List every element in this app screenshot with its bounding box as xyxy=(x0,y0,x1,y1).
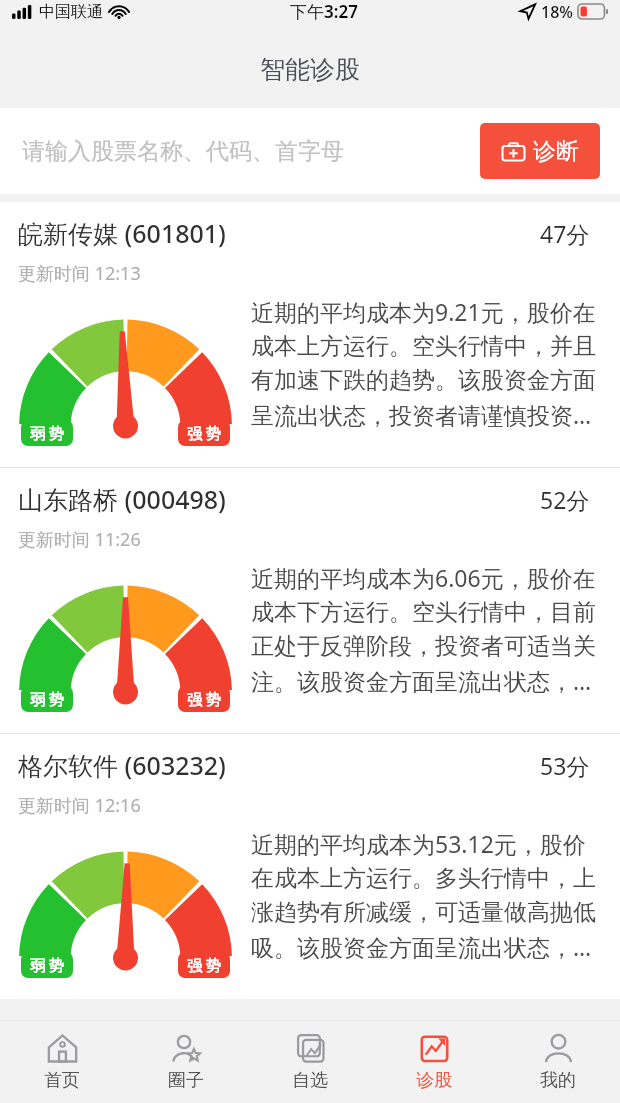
staticText: 山东路桥 (000498) xyxy=(18,482,226,516)
staticText: 强 势 xyxy=(187,689,221,709)
staticText: 智能诊股 xyxy=(260,54,360,85)
staticText: 请输入股票名称、代码、首字母 xyxy=(22,137,344,166)
staticText: 格尔软件 (603232) xyxy=(18,748,226,782)
staticText: 首页 xyxy=(44,1069,80,1092)
button[interactable]: 自选 xyxy=(248,1021,372,1103)
button[interactable]: 请输入股票名称、代码、首字母 xyxy=(22,137,472,166)
staticText: 弱 势 xyxy=(30,423,64,443)
staticText: 皖新传媒 (601801) xyxy=(18,216,226,250)
staticText: 47分 xyxy=(540,218,590,249)
staticText: 近期的平均成本为6.06元，股价在成本下方运行。空头行情中，目前正处于反弹阶段，… xyxy=(251,562,602,697)
staticText: 52分 xyxy=(540,484,590,515)
staticText: 18% xyxy=(541,1,573,23)
button[interactable]: 圈子 xyxy=(124,1021,248,1103)
staticText: 强 势 xyxy=(187,423,221,443)
staticText: 近期的平均成本为9.21元，股价在成本上方运行。空头行情中，并且有加速下跌的趋势… xyxy=(251,296,602,431)
staticText: 近期的平均成本为53.12元，股价在成本上方运行。多头行情中，上涨趋势有所减缓，… xyxy=(251,828,602,963)
staticText: 弱 势 xyxy=(30,689,64,709)
staticText: 诊断 xyxy=(533,137,579,166)
button[interactable]: 皖新传媒 (601801) xyxy=(0,202,620,467)
staticText: 中国联通 xyxy=(39,2,103,22)
staticText: 强 势 xyxy=(187,955,221,975)
staticText: 诊股 xyxy=(416,1069,452,1092)
staticText: 圈子 xyxy=(168,1069,204,1092)
staticText: 53分 xyxy=(540,750,590,781)
button[interactable]: 首页 xyxy=(0,1021,124,1103)
button[interactable]: 诊断 xyxy=(480,123,600,179)
staticText: 更新时间 12:13 xyxy=(18,261,141,286)
staticText: 弱 势 xyxy=(30,955,64,975)
button[interactable]: 我的 xyxy=(496,1021,620,1103)
staticText: 自选 xyxy=(292,1069,328,1092)
staticText: 更新时间 12:16 xyxy=(18,793,141,818)
button[interactable]: 诊股 xyxy=(372,1021,496,1103)
staticText: 下午3:27 xyxy=(290,0,358,23)
staticText: 更新时间 11:26 xyxy=(18,527,141,552)
button[interactable]: 山东路桥 (000498) xyxy=(0,468,620,733)
button[interactable]: 格尔软件 (603232) xyxy=(0,734,620,999)
staticText: 我的 xyxy=(540,1069,576,1092)
